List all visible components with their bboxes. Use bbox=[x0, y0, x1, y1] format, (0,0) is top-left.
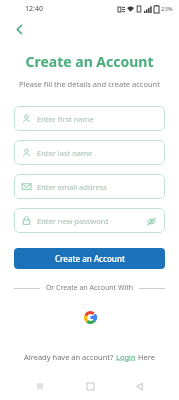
staticText: Enter first name bbox=[37, 114, 94, 124]
button[interactable]: Recent apps bbox=[30, 378, 50, 394]
staticText: Create an Account bbox=[55, 253, 125, 264]
staticText: 12:40 bbox=[25, 4, 43, 14]
staticText: Already have an account? bbox=[24, 352, 116, 362]
button[interactable]: Home bbox=[80, 378, 100, 394]
staticText: Login bbox=[116, 352, 136, 362]
staticText: Please fill the details and create accou… bbox=[0, 79, 179, 89]
button[interactable]: Enter last name bbox=[14, 140, 165, 165]
button[interactable]: Back bbox=[8, 18, 30, 40]
staticText: Or Create an Account With bbox=[40, 283, 139, 293]
staticText: 23% bbox=[161, 5, 173, 13]
button[interactable]: Enter new password bbox=[14, 208, 165, 233]
button[interactable]: Enter email address bbox=[14, 174, 165, 199]
button[interactable]: Already have an account? bbox=[0, 352, 179, 362]
staticText: Here bbox=[136, 352, 155, 362]
button[interactable]: Back bbox=[129, 378, 149, 394]
button[interactable]: Enter first name bbox=[14, 106, 165, 131]
staticText: Enter last name bbox=[37, 148, 93, 158]
button[interactable]: Create an Account bbox=[14, 248, 165, 269]
staticText: Enter new password bbox=[37, 216, 109, 226]
button[interactable]: Toggle password visibility bbox=[145, 215, 157, 227]
staticText: Create an Account bbox=[0, 52, 179, 71]
button[interactable]: Sign up with Google bbox=[80, 307, 100, 327]
staticText: Enter email address bbox=[37, 182, 107, 192]
